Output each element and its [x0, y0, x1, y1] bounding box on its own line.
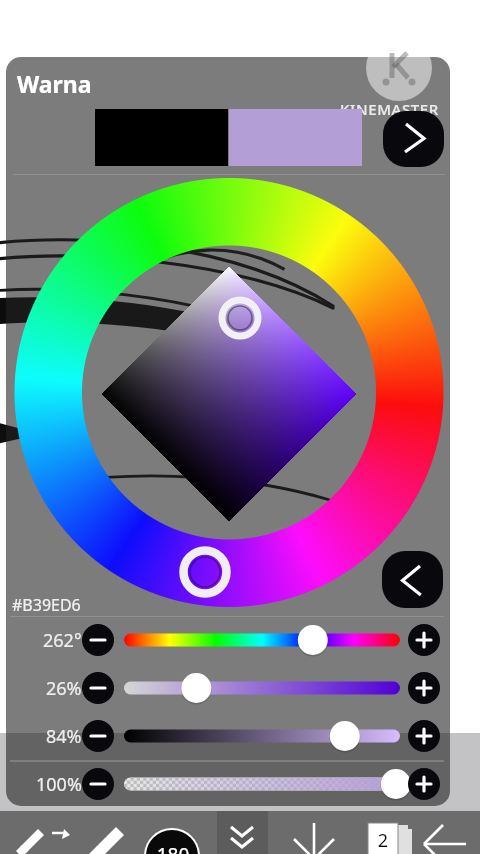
button[interactable]: Decrease 26%: [82, 672, 114, 704]
button[interactable]: 84% slider: [118, 718, 410, 754]
button[interactable]: 26% slider: [118, 670, 410, 706]
staticText: 262°: [43, 628, 82, 653]
button[interactable]: Increase 100%: [408, 768, 440, 800]
staticText: 100%: [36, 772, 82, 797]
button[interactable]: 100% slider: [118, 766, 410, 802]
staticText: Warna: [17, 68, 92, 99]
button[interactable]: 262° slider: [118, 622, 410, 658]
button[interactable]: Back: [382, 551, 443, 608]
staticText: 2: [370, 828, 396, 853]
button[interactable]: Decrease 262°: [82, 624, 114, 656]
button[interactable]: Increase 84%: [408, 720, 440, 752]
staticText: #B39ED6: [12, 594, 81, 616]
button[interactable]: Next: [383, 111, 444, 167]
button[interactable]: Decrease 100%: [82, 768, 114, 800]
button[interactable]: Decrease 84%: [82, 720, 114, 752]
staticText: 84%: [46, 724, 82, 749]
button[interactable]: Increase 26%: [408, 672, 440, 704]
button[interactable]: Increase 262°: [408, 624, 440, 656]
staticText: 180: [148, 842, 198, 854]
staticText: 26%: [46, 676, 82, 701]
staticText: KINEMASTER: [340, 99, 439, 119]
button[interactable]: Colour wheel: [14, 178, 444, 608]
